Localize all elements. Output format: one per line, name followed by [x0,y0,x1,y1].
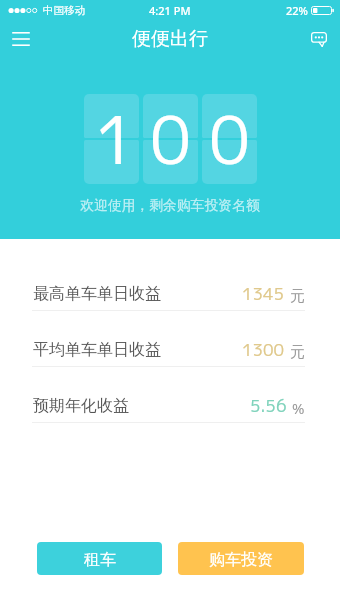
button[interactable]: Messages [298,20,340,58]
staticText: 1345 [242,282,285,306]
staticText: 平均单车单日收益 [33,340,161,360]
staticText: 购车投资 [209,550,273,570]
button[interactable]: 最高单车单日收益 [0,255,340,311]
staticText: 元 [290,343,305,362]
staticText: 0 [209,93,250,183]
button[interactable]: 租车 [37,542,162,575]
staticText: 4:21 PM [149,3,191,18]
staticText: 22% [286,3,308,18]
staticText: 1300 [242,338,285,362]
staticText: % [292,398,305,418]
button[interactable]: Menu [0,20,42,58]
staticText: 欢迎使用，剩余购车投资名额 [0,197,340,214]
staticText: 1 [95,93,136,183]
staticText: 5.56 [250,394,287,418]
button[interactable]: 预期年化收益 [0,367,340,423]
staticText: 0 [150,93,191,183]
staticText: 元 [290,287,305,306]
staticText: 预期年化收益 [33,396,129,416]
staticText: 租车 [84,550,116,570]
button[interactable]: 平均单车单日收益 [0,311,340,367]
staticText: 最高单车单日收益 [33,284,161,304]
button[interactable]: 购车投资 [178,542,304,575]
staticText: 中国移动 [43,4,85,17]
staticText: 便便出行 [132,27,208,51]
